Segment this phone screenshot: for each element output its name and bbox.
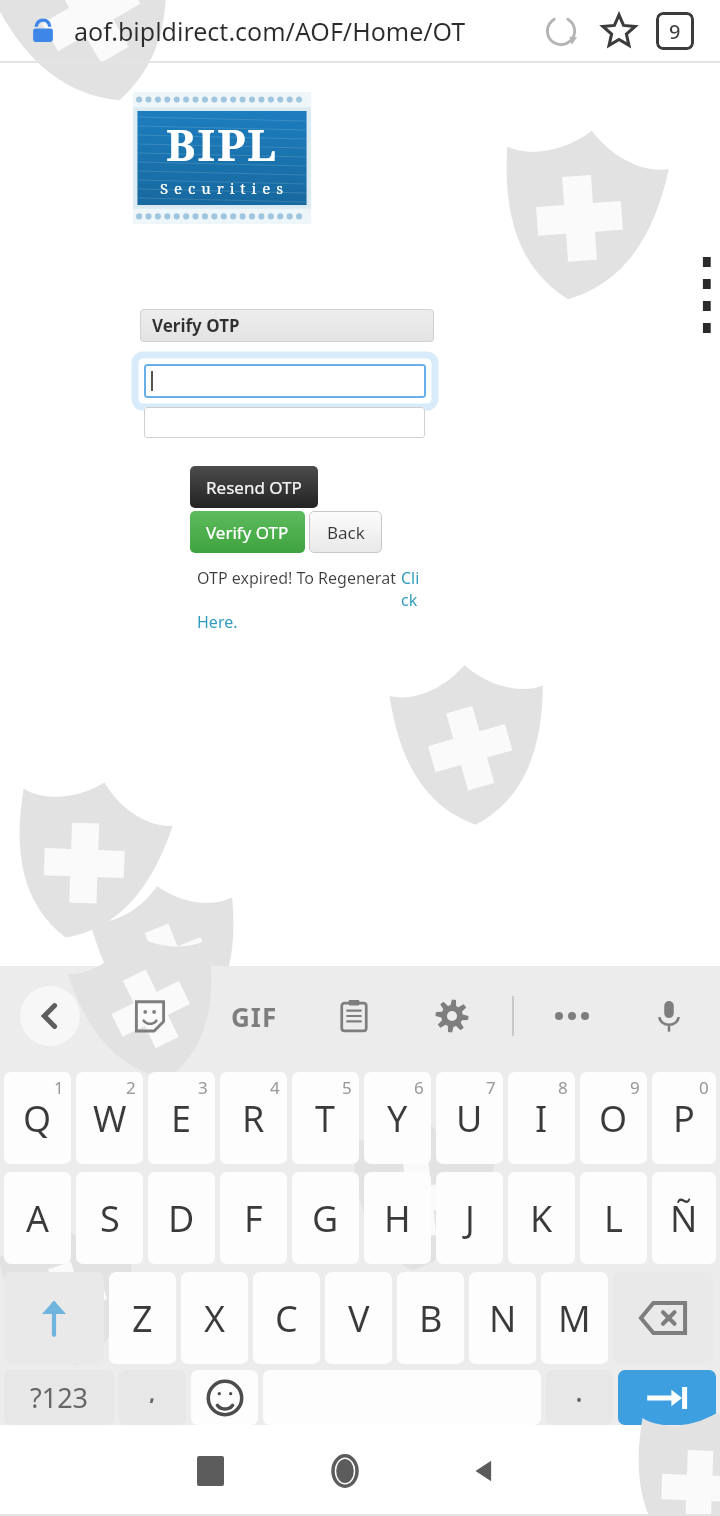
staticText: OTP expired! To Regenerat — [197, 567, 401, 589]
staticText: S e c u r i t i e s — [160, 178, 284, 198]
button[interactable]: GIF — [222, 984, 286, 1048]
button[interactable]: B — [397, 1272, 464, 1364]
button[interactable]: Here. — [197, 611, 238, 633]
staticText: D — [168, 1194, 195, 1243]
staticText: N — [489, 1294, 517, 1343]
button[interactable]: Back — [420, 1425, 550, 1516]
staticText: 5 — [342, 1076, 352, 1099]
staticText: P — [673, 1094, 695, 1143]
staticText: 4 — [270, 1076, 280, 1099]
staticText: C — [275, 1294, 298, 1343]
staticText: 3 — [198, 1076, 208, 1099]
button[interactable]: I — [508, 1072, 575, 1164]
button[interactable]: G — [292, 1172, 359, 1264]
button[interactable]: J — [436, 1172, 503, 1264]
staticText: S — [100, 1194, 120, 1243]
button[interactable]: Ñ — [652, 1172, 716, 1264]
button[interactable]: aof.bipldirect.com/AOF/Home/OT — [74, 7, 532, 55]
staticText: Q — [23, 1094, 52, 1143]
button[interactable]: C — [253, 1272, 320, 1364]
staticText: I — [535, 1094, 548, 1143]
button[interactable]: Q — [4, 1072, 71, 1164]
button[interactable] — [144, 364, 426, 398]
button[interactable]: Reload — [532, 2, 590, 60]
button[interactable]: H — [364, 1172, 431, 1264]
button[interactable]: Emoji — [191, 1370, 258, 1425]
button[interactable]: X — [181, 1272, 248, 1364]
staticText: Resend OTP — [206, 476, 302, 499]
button[interactable]: Shift — [4, 1272, 104, 1364]
button[interactable]: U — [436, 1072, 503, 1164]
staticText: F — [244, 1194, 263, 1243]
button[interactable]: R — [220, 1072, 287, 1164]
staticText: U — [456, 1094, 483, 1143]
staticText: 7 — [486, 1076, 496, 1099]
button[interactable]: M — [541, 1272, 608, 1364]
button[interactable]: Tabs, 9 open — [648, 4, 702, 58]
button[interactable] — [144, 407, 425, 438]
staticText: aof.bipldirect.com/AOF/Home/OT — [74, 14, 466, 48]
staticText: GIF — [231, 999, 278, 1034]
button[interactable]: D — [148, 1172, 215, 1264]
button[interactable]: N — [469, 1272, 536, 1364]
button[interactable]: Recent apps — [150, 1425, 270, 1516]
button[interactable]: Settings — [424, 988, 480, 1044]
button[interactable]: Stickers — [122, 988, 178, 1044]
button[interactable]: Back — [309, 511, 382, 553]
staticText: , — [148, 1370, 157, 1403]
button[interactable]: Verify OTP — [190, 511, 305, 553]
button[interactable]: O — [580, 1072, 647, 1164]
staticText: 9 — [630, 1076, 640, 1099]
button[interactable]: S — [76, 1172, 143, 1264]
staticText: K — [530, 1194, 553, 1243]
button[interactable]: Z — [109, 1272, 176, 1364]
staticText: W — [93, 1094, 127, 1143]
button[interactable]: Home — [270, 1425, 420, 1516]
staticText: Verify OTP — [152, 314, 240, 337]
button[interactable]: F — [220, 1172, 287, 1264]
button[interactable]: E — [148, 1072, 215, 1164]
staticText: 0 — [699, 1076, 709, 1099]
button[interactable]: More options — [544, 988, 600, 1044]
button[interactable]: Enter — [618, 1370, 716, 1425]
staticText: 8 — [558, 1076, 568, 1099]
staticText: Z — [132, 1294, 153, 1343]
button[interactable]: Bookmark — [590, 2, 648, 60]
button[interactable]: L — [580, 1172, 647, 1264]
staticText: B — [419, 1294, 443, 1343]
staticText: R — [242, 1094, 265, 1143]
staticText: ?123 — [30, 1379, 89, 1416]
button[interactable]: T — [292, 1072, 359, 1164]
staticText: BIPL — [166, 114, 279, 174]
staticText: Back — [327, 521, 365, 544]
staticText: 6 — [414, 1076, 424, 1099]
button[interactable]: V — [325, 1272, 392, 1364]
button[interactable]: . — [546, 1370, 613, 1425]
staticText: M — [558, 1294, 591, 1343]
button[interactable]: A — [4, 1172, 71, 1264]
button[interactable]: Click — [401, 567, 427, 611]
button[interactable]: Secure connection — [26, 14, 60, 48]
staticText: 2 — [126, 1076, 136, 1099]
staticText: A — [26, 1194, 50, 1243]
button[interactable]: Y — [364, 1072, 431, 1164]
button[interactable]: BIPL — [133, 92, 311, 224]
button[interactable]: Back — [20, 986, 80, 1046]
button[interactable]: , — [119, 1370, 186, 1425]
staticText: Y — [387, 1094, 408, 1143]
staticText: Verify OTP — [206, 521, 289, 544]
button[interactable]: K — [508, 1172, 575, 1264]
button[interactable]: Clipboard — [326, 988, 382, 1044]
button[interactable]: W — [76, 1072, 143, 1164]
button[interactable]: Backspace — [613, 1272, 713, 1364]
staticText: 1 — [54, 1076, 64, 1099]
staticText: X — [204, 1294, 226, 1343]
button[interactable]: ?123 — [4, 1370, 114, 1425]
button[interactable]: Resend OTP — [190, 466, 318, 508]
button[interactable]: Voice input — [640, 987, 698, 1045]
staticText: H — [384, 1194, 411, 1243]
button[interactable]: P — [652, 1072, 716, 1164]
staticText: E — [171, 1094, 192, 1143]
staticText: O — [599, 1094, 628, 1143]
